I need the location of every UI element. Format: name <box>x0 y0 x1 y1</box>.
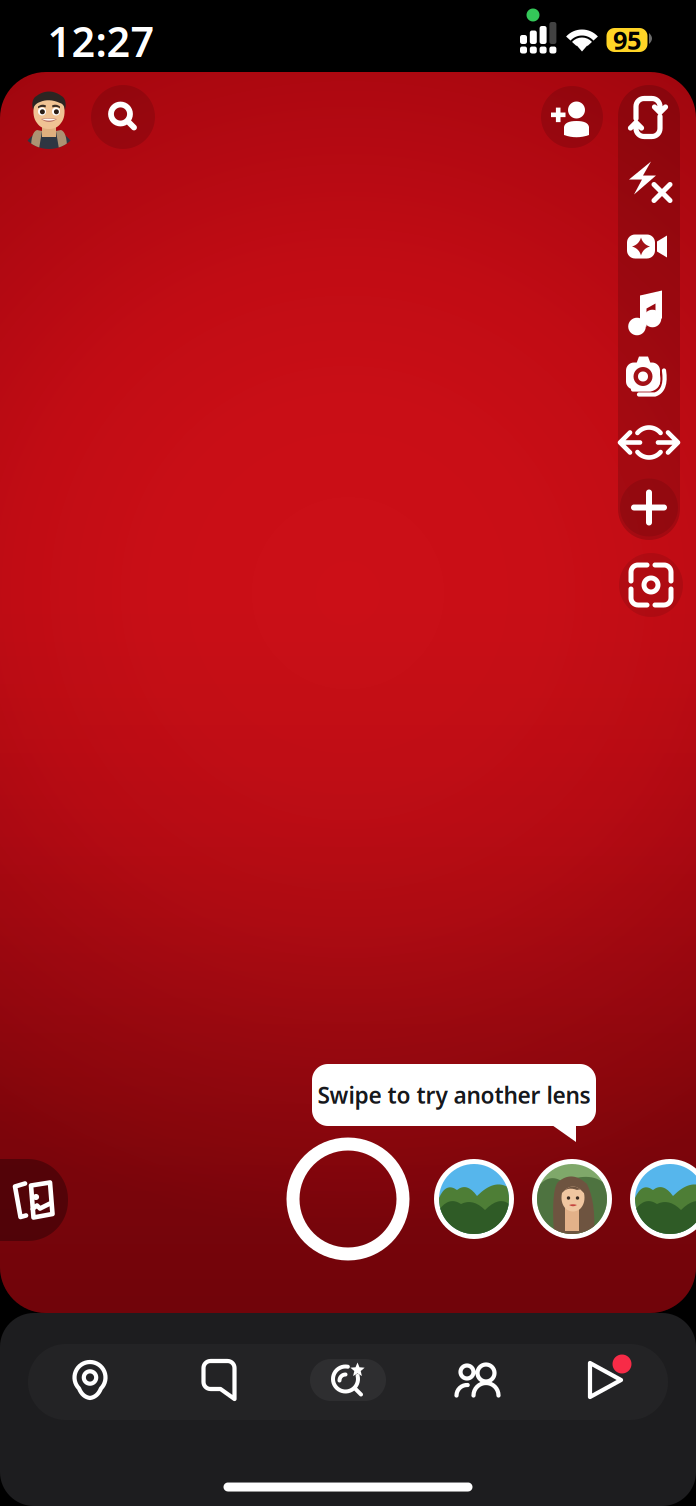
button[interactable]: Lens 1 <box>434 1159 514 1239</box>
staticText: 12:27 <box>47 14 154 68</box>
button[interactable]: Stories <box>421 1334 533 1426</box>
staticText: Swipe to try another lens <box>317 1080 590 1110</box>
button[interactable]: Camera <box>292 1334 404 1426</box>
button[interactable]: Chat <box>163 1334 275 1426</box>
button[interactable]: Flash off <box>616 150 682 215</box>
button[interactable]: Rotate <box>616 410 682 475</box>
button[interactable]: Add friends <box>541 86 603 148</box>
button[interactable]: Memories <box>0 1159 68 1241</box>
button[interactable]: Video effects <box>616 215 682 280</box>
button[interactable]: Multi snap <box>616 345 682 410</box>
button[interactable]: Capture <box>286 1137 410 1261</box>
button[interactable]: Add lens <box>616 475 682 540</box>
button[interactable]: Search <box>91 85 155 149</box>
button[interactable]: Lens 2 <box>532 1159 612 1239</box>
staticText: 95 <box>613 23 641 57</box>
button[interactable]: Map <box>34 1334 146 1426</box>
button[interactable]: Spotlight <box>550 1334 662 1426</box>
button[interactable]: Flip camera <box>616 85 682 150</box>
button[interactable]: Profile <box>17 85 81 149</box>
button[interactable]: Scan <box>619 553 683 617</box>
button[interactable]: Lens 3 <box>630 1159 696 1239</box>
button[interactable]: Music <box>616 280 682 345</box>
